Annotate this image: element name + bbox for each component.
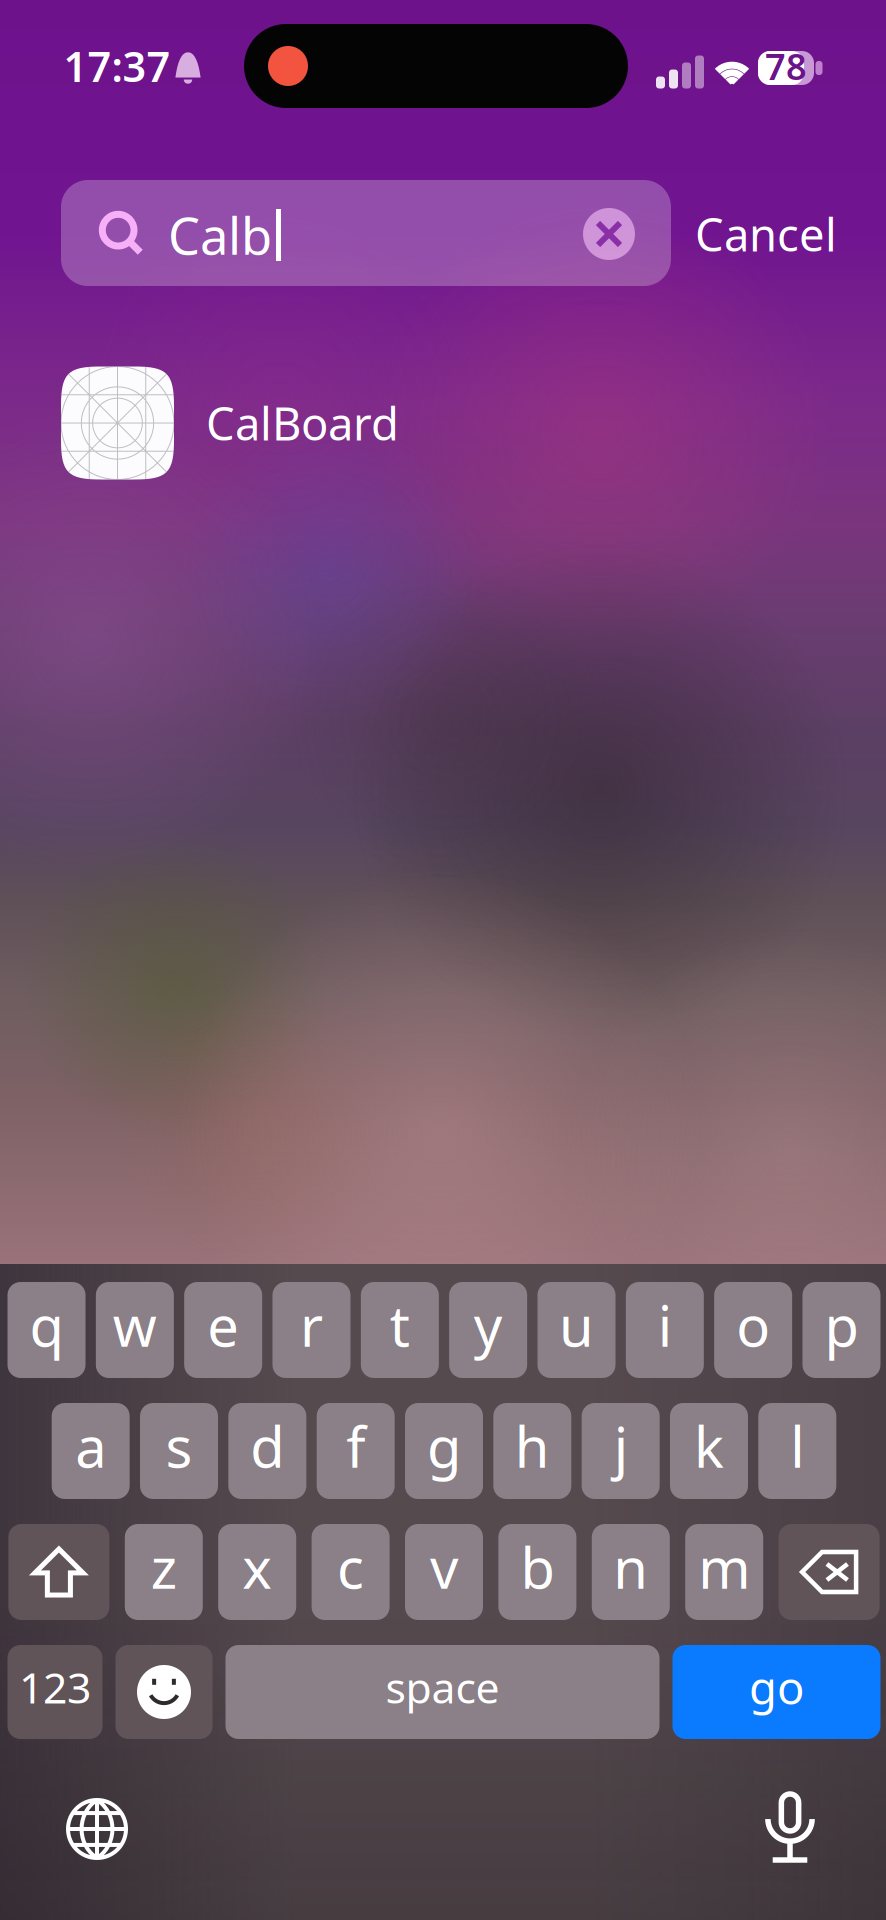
staticText: k xyxy=(694,1409,724,1483)
staticText: Cancel xyxy=(695,204,837,264)
button[interactable]: l xyxy=(758,1403,836,1499)
staticText: w xyxy=(113,1288,157,1362)
button[interactable]: x xyxy=(218,1524,296,1620)
button[interactable]: go xyxy=(672,1645,880,1739)
button[interactable]: q xyxy=(7,1282,85,1378)
staticText: g xyxy=(427,1409,461,1483)
button[interactable]: i xyxy=(626,1282,704,1378)
staticText: d xyxy=(250,1409,284,1483)
staticText: j xyxy=(614,1409,628,1483)
button[interactable]: m xyxy=(685,1524,763,1620)
button[interactable]: Cancel xyxy=(683,192,849,276)
staticText: z xyxy=(151,1530,177,1604)
button[interactable]: h xyxy=(493,1403,571,1499)
button[interactable]: Delete xyxy=(779,1524,880,1620)
staticText: go xyxy=(749,1657,804,1717)
staticText: i xyxy=(658,1288,672,1362)
staticText: y xyxy=(474,1288,503,1362)
button[interactable]: space xyxy=(225,1645,659,1739)
button[interactable]: f xyxy=(317,1403,395,1499)
staticText: space xyxy=(385,1659,499,1715)
staticText: t xyxy=(390,1288,410,1362)
staticText: f xyxy=(346,1409,365,1483)
staticText: 78 xyxy=(765,42,807,90)
staticText: n xyxy=(613,1530,648,1604)
staticText: u xyxy=(559,1288,594,1362)
button[interactable]: o xyxy=(714,1282,792,1378)
button[interactable]: w xyxy=(96,1282,174,1378)
staticText: Calb xyxy=(168,201,272,269)
button[interactable]: g xyxy=(405,1403,483,1499)
staticText: h xyxy=(515,1409,550,1483)
button[interactable]: Emoji xyxy=(115,1645,212,1739)
staticText: o xyxy=(736,1288,770,1362)
staticText: s xyxy=(165,1409,192,1483)
button[interactable]: u xyxy=(537,1282,615,1378)
button[interactable]: Clear text xyxy=(576,201,642,267)
button[interactable]: Next keyboard xyxy=(46,1778,148,1880)
button[interactable]: n xyxy=(592,1524,670,1620)
staticText: v xyxy=(430,1530,458,1604)
staticText: 123 xyxy=(19,1659,91,1715)
button[interactable]: b xyxy=(498,1524,576,1620)
button[interactable]: CalBoard xyxy=(61,366,881,479)
button[interactable]: Dictation xyxy=(742,1770,838,1884)
button[interactable]: z xyxy=(125,1524,203,1620)
button[interactable]: 123 xyxy=(7,1645,102,1739)
staticText: b xyxy=(520,1530,554,1604)
button[interactable]: d xyxy=(228,1403,306,1499)
staticText: r xyxy=(300,1288,323,1362)
staticText: q xyxy=(29,1288,63,1362)
staticText: e xyxy=(207,1288,239,1362)
button[interactable]: k xyxy=(670,1403,748,1499)
button[interactable]: y xyxy=(449,1282,527,1378)
button[interactable]: j xyxy=(582,1403,660,1499)
button[interactable]: p xyxy=(802,1282,880,1378)
button[interactable]: a xyxy=(52,1403,130,1499)
staticText: m xyxy=(698,1530,750,1604)
button[interactable]: Shift xyxy=(8,1524,109,1620)
button[interactable]: e xyxy=(184,1282,262,1378)
staticText: a xyxy=(75,1409,106,1483)
button[interactable]: v xyxy=(405,1524,483,1620)
staticText: p xyxy=(824,1288,858,1362)
staticText: 17:37 xyxy=(63,39,170,93)
staticText: l xyxy=(790,1409,804,1483)
button[interactable]: r xyxy=(272,1282,350,1378)
staticText: c xyxy=(337,1530,364,1604)
button[interactable]: t xyxy=(361,1282,439,1378)
button[interactable]: s xyxy=(140,1403,218,1499)
staticText: x xyxy=(242,1530,272,1604)
button[interactable]: c xyxy=(312,1524,390,1620)
staticText: CalBoard xyxy=(206,393,399,453)
